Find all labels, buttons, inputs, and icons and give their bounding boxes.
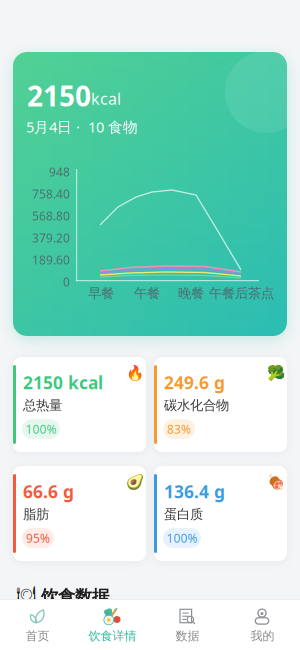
- staticText: 午餐: [134, 285, 160, 301]
- staticText: 我的: [250, 629, 274, 643]
- button[interactable]: 首页: [0, 601, 75, 649]
- button[interactable]: 饮食详情: [75, 601, 150, 649]
- staticText: 0: [63, 274, 70, 290]
- staticText: 95%: [26, 530, 50, 546]
- staticText: 晚餐: [178, 285, 204, 301]
- staticText: 蛋白质: [164, 506, 203, 522]
- button[interactable]: 249.6 g: [154, 357, 287, 452]
- button[interactable]: 我的: [225, 601, 300, 649]
- button[interactable]: 2150 kcal: [13, 357, 146, 452]
- staticText: 136.4 g: [164, 480, 225, 503]
- button[interactable]: 66.6 g: [13, 466, 146, 561]
- staticText: 758.40: [32, 186, 70, 202]
- staticText: 早餐: [88, 285, 114, 301]
- staticText: 2150: [27, 77, 91, 114]
- staticText: 379.20: [32, 230, 70, 246]
- button[interactable]: 数据: [150, 601, 225, 649]
- staticText: 249.6 g: [164, 371, 225, 394]
- staticText: 首页: [25, 629, 49, 643]
- button[interactable]: 136.4 g: [154, 466, 287, 561]
- staticText: 🔥: [126, 365, 144, 382]
- staticText: 189.60: [32, 252, 70, 268]
- staticText: 🍖: [267, 474, 285, 491]
- staticText: 568.80: [32, 208, 70, 224]
- staticText: 脂肪: [23, 506, 49, 522]
- staticText: kcal: [91, 88, 121, 109]
- staticText: 100%: [166, 530, 197, 546]
- staticText: 总热量: [23, 397, 62, 413]
- staticText: 5月4日 · 10 食物: [26, 117, 138, 136]
- staticText: 碳水化合物: [164, 397, 229, 413]
- staticText: 数据: [175, 629, 199, 643]
- staticText: 100%: [25, 421, 56, 437]
- staticText: 🍽: [16, 585, 36, 603]
- staticText: 948: [49, 164, 70, 180]
- staticText: 66.6 g: [23, 480, 74, 503]
- staticText: 饮食数据: [41, 586, 109, 607]
- staticText: 83%: [167, 421, 191, 437]
- staticText: 午餐后茶点: [209, 285, 274, 301]
- staticText: 饮食详情: [88, 629, 136, 643]
- staticText: 2150 kcal: [23, 371, 103, 394]
- staticText: 🥦: [267, 365, 285, 382]
- staticText: 🥑: [126, 474, 144, 491]
